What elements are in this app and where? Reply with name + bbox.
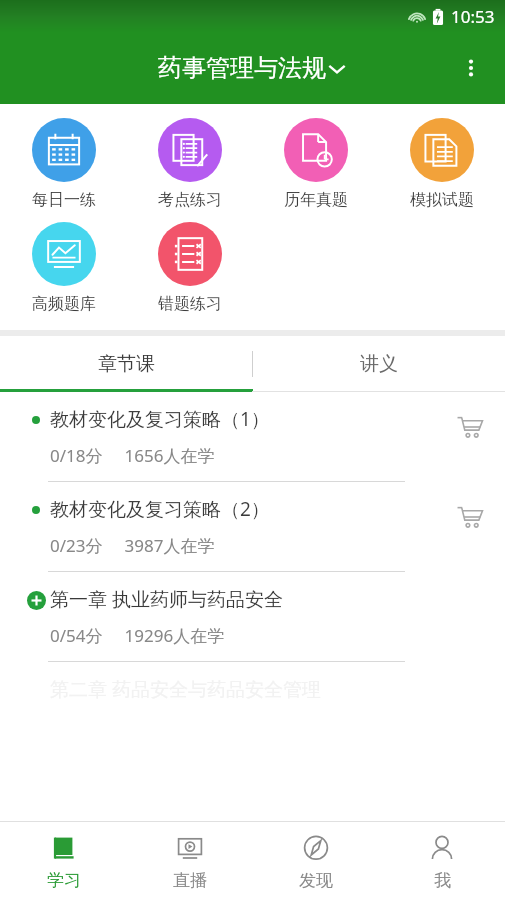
button[interactable]: 章节课	[0, 336, 252, 392]
button[interactable]: 学习	[0, 822, 127, 900]
staticText: 历年真题	[284, 190, 348, 210]
staticText: 讲义	[360, 352, 398, 376]
button[interactable]: More options	[451, 48, 491, 88]
staticText: 教材变化及复习策略（2）	[50, 496, 270, 522]
staticText: 药事管理与法规	[158, 53, 326, 83]
staticText: 章节课	[98, 352, 155, 376]
button[interactable]: 每日一练	[0, 112, 127, 216]
staticText: 第一章 执业药师与药品安全	[50, 586, 283, 612]
button[interactable]: Add to cart	[449, 406, 491, 448]
staticText: 每日一练	[32, 190, 96, 210]
button[interactable]: 讲义	[253, 336, 505, 392]
staticText: 0/18分 1656人在学	[50, 444, 215, 467]
button[interactable]: 教材变化及复习策略（1）	[0, 392, 505, 482]
button[interactable]: 药事管理与法规	[158, 53, 348, 83]
button[interactable]: Add to cart	[449, 496, 491, 538]
button[interactable]: 高频题库	[0, 216, 127, 320]
staticText: 高频题库	[32, 294, 96, 314]
staticText: 考点练习	[158, 190, 222, 210]
button[interactable]: 第一章 执业药师与药品安全	[0, 572, 505, 662]
staticText: 错题练习	[158, 294, 222, 314]
button[interactable]: 直播	[127, 822, 253, 900]
staticText: 模拟试题	[410, 190, 474, 210]
staticText: 直播	[173, 870, 207, 891]
button[interactable]: 模拟试题	[379, 112, 505, 216]
staticText: 0/54分 19296人在学	[50, 624, 225, 647]
staticText: 学习	[47, 870, 81, 891]
staticText: 0/23分 3987人在学	[50, 534, 215, 557]
button[interactable]: 发现	[253, 822, 379, 900]
button[interactable]: 历年真题	[253, 112, 379, 216]
button[interactable]: 教材变化及复习策略（2）	[0, 482, 505, 572]
staticText: 第二章 药品安全与药品安全管理	[50, 676, 321, 702]
staticText: 发现	[299, 870, 333, 891]
staticText: 10:53	[451, 5, 495, 28]
staticText: 教材变化及复习策略（1）	[50, 406, 270, 432]
button[interactable]: 考点练习	[127, 112, 253, 216]
button[interactable]: 我	[379, 822, 505, 900]
staticText: 我	[434, 870, 451, 891]
button[interactable]: 错题练习	[127, 216, 253, 320]
